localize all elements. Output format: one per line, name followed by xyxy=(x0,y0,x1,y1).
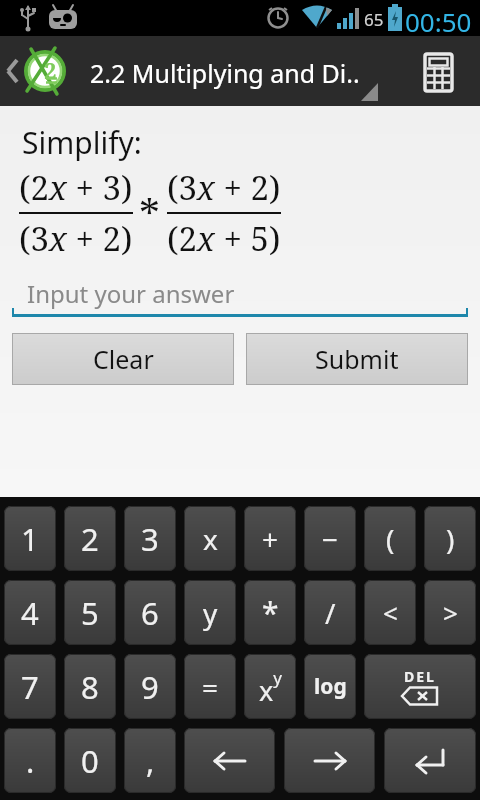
staticText: log xyxy=(314,672,347,701)
staticText: 2 xyxy=(81,518,99,560)
staticText: Clear xyxy=(93,342,154,376)
button[interactable]: 2 xyxy=(64,506,116,571)
staticText: x xyxy=(203,520,218,558)
staticText: ( xyxy=(386,520,395,558)
staticText: / xyxy=(325,594,336,632)
staticText: + xyxy=(262,520,279,558)
staticText: * xyxy=(262,592,279,633)
button[interactable]: 8 xyxy=(64,654,116,719)
button[interactable]: y xyxy=(184,580,236,645)
button[interactable]: 2 xyxy=(0,36,86,106)
button[interactable]: < xyxy=(364,580,416,645)
button[interactable] xyxy=(184,728,275,793)
staticText: − xyxy=(322,520,339,558)
staticText: 9 xyxy=(141,666,159,708)
staticText: DEL xyxy=(404,667,436,686)
staticText: 7 xyxy=(21,666,39,708)
staticText: = xyxy=(202,668,219,706)
staticText: 0 xyxy=(81,740,99,782)
button[interactable]: 7 xyxy=(4,654,56,719)
button[interactable] xyxy=(408,36,472,106)
staticText: 00:50 xyxy=(405,4,472,39)
button[interactable]: + xyxy=(244,506,296,571)
button[interactable]: * xyxy=(244,580,296,645)
button[interactable]: 4 xyxy=(4,580,56,645)
button[interactable]: 6 xyxy=(124,580,176,645)
staticText: > xyxy=(443,595,458,630)
staticText: y xyxy=(203,594,218,632)
button[interactable]: > xyxy=(424,580,476,645)
staticText: , xyxy=(146,740,155,782)
button[interactable]: 1 xyxy=(4,506,56,571)
staticText: 2.2 Multiplying and Di.. xyxy=(90,56,360,90)
button[interactable]: 0 xyxy=(64,728,116,793)
button[interactable]: ) xyxy=(424,506,476,571)
staticText: xy xyxy=(259,666,282,708)
staticText: Simplify: xyxy=(22,122,142,163)
staticText: 65 xyxy=(364,8,384,31)
staticText: ) xyxy=(446,520,455,558)
button[interactable]: ( xyxy=(364,506,416,571)
staticText: * xyxy=(139,185,161,242)
staticText: (2x + 3) xyxy=(19,165,133,210)
button[interactable]: 2.2 Multiplying and Di.. xyxy=(86,36,380,106)
staticText: . xyxy=(26,740,35,782)
staticText: 5 xyxy=(81,592,99,634)
button[interactable]: / xyxy=(304,580,356,645)
button[interactable] xyxy=(284,728,375,793)
button[interactable]: Input your answer xyxy=(12,271,468,317)
button[interactable]: Clear xyxy=(12,333,234,385)
button[interactable]: x xyxy=(184,506,236,571)
button[interactable]: = xyxy=(184,654,236,719)
staticText: 4 xyxy=(21,592,39,634)
staticText: (3x + 2) xyxy=(167,165,281,210)
button[interactable]: xy xyxy=(244,654,296,719)
button[interactable]: . xyxy=(4,728,56,793)
staticText: < xyxy=(383,595,398,630)
button[interactable] xyxy=(384,728,476,793)
staticText: 6 xyxy=(141,592,159,634)
staticText: Input your answer xyxy=(27,277,235,310)
staticText: Submit xyxy=(315,342,399,376)
button[interactable]: log xyxy=(304,654,356,719)
staticText: (2x + 5) xyxy=(167,216,281,261)
staticText: (3x + 2) xyxy=(19,216,133,261)
staticText: 8 xyxy=(81,666,99,708)
staticText: 2 xyxy=(44,55,57,85)
button[interactable]: DEL xyxy=(364,654,476,719)
button[interactable]: 9 xyxy=(124,654,176,719)
staticText: 1 xyxy=(21,518,39,560)
button[interactable]: , xyxy=(124,728,176,793)
button[interactable]: Submit xyxy=(246,333,468,385)
button[interactable]: − xyxy=(304,506,356,571)
staticText: 3 xyxy=(141,518,159,560)
button[interactable]: 5 xyxy=(64,580,116,645)
button[interactable]: 3 xyxy=(124,506,176,571)
